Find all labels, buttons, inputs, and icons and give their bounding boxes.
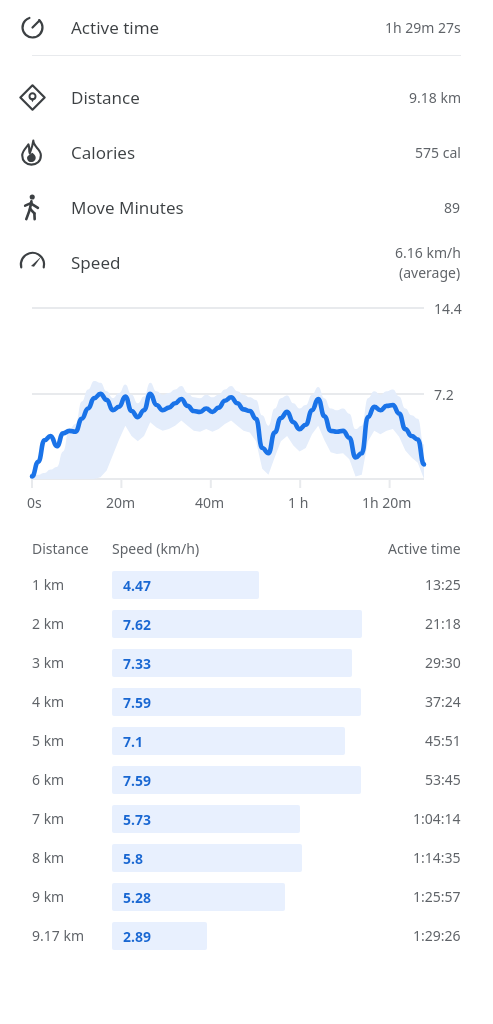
staticText: 7 km: [32, 809, 65, 828]
other: Speed: [19, 249, 46, 276]
other: Distance: [19, 84, 46, 111]
button[interactable]: 3 km: [0, 643, 493, 682]
button[interactable]: 5 km: [0, 721, 493, 760]
staticText: Distance: [32, 539, 89, 558]
staticText: 53:45: [425, 770, 461, 789]
staticText: 4 km: [32, 692, 65, 711]
staticText: 29:30: [425, 653, 461, 672]
staticText: 5.73: [123, 810, 151, 829]
button[interactable]: 8 km: [0, 838, 493, 877]
staticText: 7.1: [123, 732, 143, 751]
staticText: 6 km: [32, 770, 65, 789]
other: Active time: [19, 14, 46, 41]
button[interactable]: 9 km: [0, 877, 493, 916]
staticText: 5.8: [123, 849, 143, 868]
staticText: 37:24: [425, 692, 461, 711]
staticText: 1:25:57: [413, 887, 461, 906]
staticText: 4.47: [123, 576, 151, 595]
button[interactable]: 1 km: [0, 565, 493, 604]
button[interactable]: Active time: [0, 0, 493, 55]
button[interactable]: 7 km: [0, 799, 493, 838]
staticText: 9.17 km: [32, 926, 84, 945]
button[interactable]: Move Minutes: [0, 180, 493, 235]
staticText: Speed (km/h): [112, 539, 200, 558]
staticText: 8 km: [32, 848, 65, 867]
button[interactable]: Distance: [0, 70, 493, 125]
staticText: 6.16 km/h: [395, 243, 461, 262]
button[interactable]: 2 km: [0, 604, 493, 643]
staticText: 40m: [195, 493, 225, 512]
staticText: 7.2: [434, 385, 454, 404]
staticText: Calories: [71, 141, 136, 164]
staticText: 9.18 km: [409, 88, 461, 107]
staticText: 1:04:14: [413, 809, 461, 828]
staticText: 13:25: [425, 575, 461, 594]
staticText: 7.59: [123, 771, 151, 790]
staticText: 45:51: [425, 731, 461, 750]
staticText: Move Minutes: [71, 196, 184, 219]
button[interactable]: 6 km: [0, 760, 493, 799]
staticText: 1:14:35: [413, 848, 461, 867]
staticText: 2.89: [123, 927, 151, 946]
staticText: 20m: [106, 493, 136, 512]
staticText: 1h 20m: [362, 493, 412, 512]
staticText: 1 h: [288, 493, 309, 512]
staticText: 5 km: [32, 731, 65, 750]
staticText: 7.33: [123, 654, 151, 673]
other: Move Minutes: [19, 194, 46, 221]
button[interactable]: Speed: [0, 235, 493, 290]
button[interactable]: 4 km: [0, 682, 493, 721]
staticText: 0s: [27, 493, 42, 512]
staticText: Active time: [71, 16, 160, 39]
staticText: 575 cal: [415, 143, 461, 162]
staticText: Distance: [71, 86, 140, 109]
staticText: 14.4: [434, 299, 462, 318]
staticText: 7.59: [123, 693, 151, 712]
staticText: 7.62: [123, 615, 151, 634]
button[interactable]: 9.17 km: [0, 916, 493, 955]
staticText: 21:18: [425, 614, 461, 633]
staticText: 2 km: [32, 614, 65, 633]
staticText: (average): [399, 263, 461, 282]
staticText: 89: [444, 198, 461, 217]
staticText: 5.28: [123, 888, 151, 907]
staticText: 1h 29m 27s: [385, 18, 461, 37]
staticText: 1 km: [32, 575, 65, 594]
staticText: 3 km: [32, 653, 65, 672]
staticText: Active time: [388, 539, 461, 558]
button[interactable]: Calories: [0, 125, 493, 180]
other: Calories: [19, 139, 46, 166]
staticText: 9 km: [32, 887, 65, 906]
staticText: 1:29:26: [413, 926, 461, 945]
staticText: Speed: [71, 251, 121, 274]
